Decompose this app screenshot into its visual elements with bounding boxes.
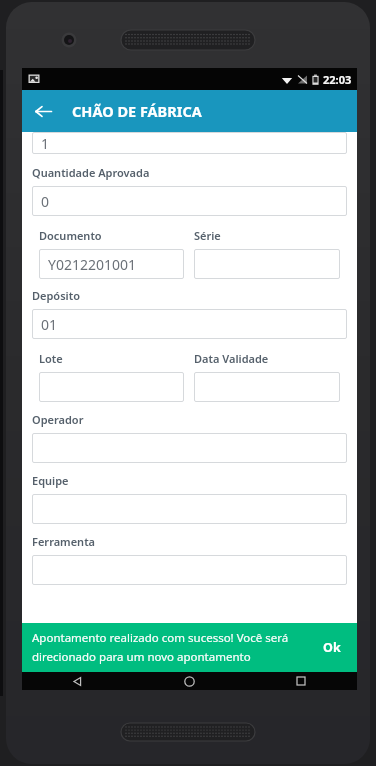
button[interactable]: 1 <box>32 132 347 154</box>
button[interactable] <box>194 372 340 402</box>
staticText: CHÃO DE FÁBRICA <box>72 101 202 121</box>
staticText: Série <box>194 228 221 243</box>
staticText: 01 <box>41 315 58 334</box>
staticText: Ferramenta <box>32 534 96 549</box>
staticText: 22:03 <box>323 72 352 87</box>
button[interactable] <box>32 555 347 585</box>
staticText: Lote <box>39 351 63 366</box>
staticText: Y0212201001 <box>48 255 137 274</box>
staticText: Data Validade <box>194 351 269 366</box>
button[interactable]: Ok <box>319 633 345 662</box>
staticText: Depósito <box>32 288 80 303</box>
staticText: direcionado para um novo apontamento <box>32 649 251 665</box>
button[interactable]: Back <box>22 672 133 690</box>
button[interactable] <box>39 372 184 402</box>
button[interactable] <box>194 249 340 279</box>
button[interactable]: Back <box>22 90 64 132</box>
staticText: 1 <box>41 134 50 153</box>
staticText: Quantidade Aprovada <box>32 165 150 180</box>
button[interactable] <box>32 494 347 524</box>
button[interactable]: 01 <box>32 309 347 339</box>
button[interactable]: Y0212201001 <box>39 249 184 279</box>
staticText: Ok <box>323 639 341 656</box>
staticText: Equipe <box>32 473 69 488</box>
staticText: 0 <box>41 192 50 211</box>
staticText: Documento <box>39 228 102 243</box>
staticText: Operador <box>32 412 84 427</box>
staticText: Apontamento realizado com sucesso! Você … <box>32 630 289 646</box>
button[interactable]: Recent apps <box>245 672 357 690</box>
button[interactable] <box>32 433 347 463</box>
button[interactable]: Home <box>133 672 245 690</box>
button[interactable]: 0 <box>32 186 347 216</box>
